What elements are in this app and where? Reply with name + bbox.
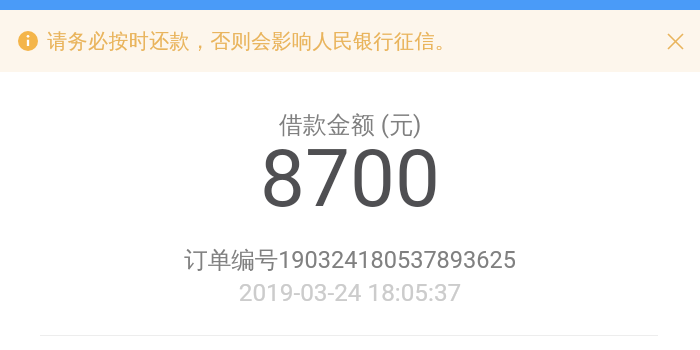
staticText: 订单编号190324180537893625 <box>0 245 700 275</box>
staticText: 借款金额 (元) <box>0 110 700 140</box>
button[interactable]: Close <box>658 24 692 58</box>
staticText: 8700 <box>0 132 700 226</box>
staticText: 请务必按时还款，否则会影响人民银行征信。 <box>47 29 455 54</box>
staticText: 2019-03-24 18:05:37 <box>0 278 700 306</box>
